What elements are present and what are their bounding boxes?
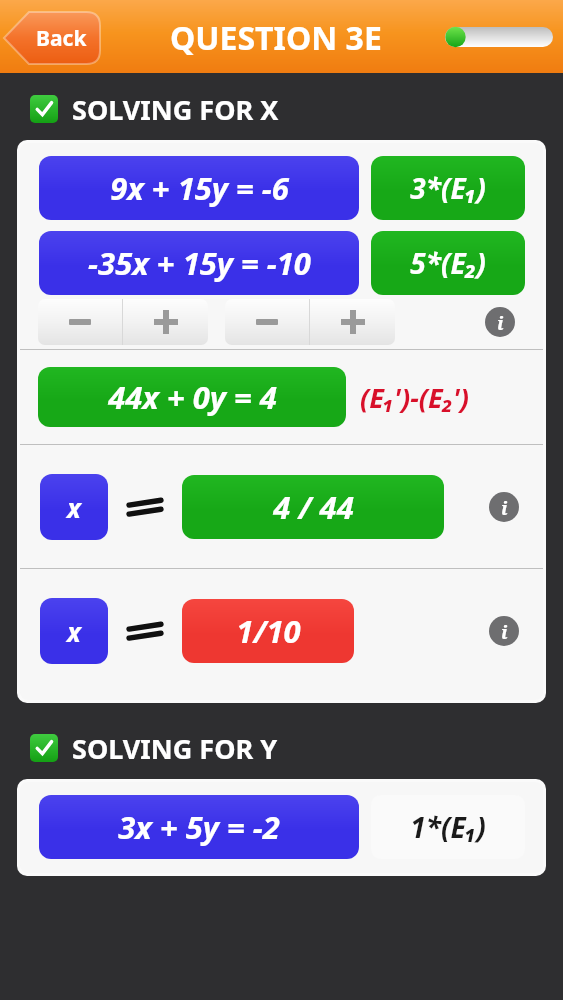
button[interactable]: Decrease	[225, 299, 309, 345]
staticText: 5*(E₂)	[410, 244, 486, 282]
button[interactable]: Information	[489, 616, 519, 646]
staticText: Back	[36, 24, 87, 53]
staticText: 3*(E₁)	[410, 169, 486, 207]
button[interactable]: x	[40, 598, 108, 664]
button[interactable]: Progress	[445, 27, 553, 47]
button[interactable]: 1*(E₁)	[371, 795, 525, 859]
button[interactable]: Decrease	[38, 299, 122, 345]
button[interactable]: Information	[489, 492, 519, 522]
staticText: x	[67, 614, 81, 649]
button[interactable]: -35x + 15y = -10	[39, 231, 359, 295]
button[interactable]: Increase	[123, 299, 208, 345]
button[interactable]: Back	[4, 12, 100, 64]
staticText: 44x + 0y = 4	[108, 376, 277, 418]
staticText: QUESTION 3E	[170, 16, 382, 60]
staticText: 1*(E₁)	[410, 808, 486, 846]
button[interactable]: 5*(E₂)	[371, 231, 525, 295]
staticText: x	[67, 490, 81, 525]
button[interactable]: 44x + 0y = 4	[38, 367, 346, 427]
staticText: i	[501, 619, 508, 644]
button[interactable]: Increase	[310, 299, 395, 345]
staticText: 4 / 44	[273, 486, 354, 528]
button[interactable]: 1/10	[182, 599, 354, 663]
button[interactable]: 3*(E₁)	[371, 156, 525, 220]
button[interactable]: Information	[485, 307, 515, 337]
button[interactable]: 4 / 44	[182, 475, 444, 539]
button[interactable]: 9x + 15y = -6	[39, 156, 359, 220]
staticText: 9x + 15y = -6	[110, 167, 289, 209]
staticText: i	[497, 310, 504, 335]
staticText: 3x + 5y = -2	[118, 806, 280, 848]
button[interactable]: SOLVING FOR Y	[0, 725, 563, 771]
button[interactable]: x	[40, 474, 108, 540]
staticText: (E₁')-(E₂')	[360, 379, 469, 416]
button[interactable]: 3x + 5y = -2	[39, 795, 359, 859]
staticText: SOLVING FOR Y	[72, 730, 278, 767]
staticText: 1/10	[236, 610, 301, 652]
button[interactable]: SOLVING FOR X	[0, 86, 563, 132]
staticText: SOLVING FOR X	[72, 91, 279, 128]
staticText: i	[501, 495, 508, 520]
staticText: -35x + 15y = -10	[88, 242, 311, 284]
